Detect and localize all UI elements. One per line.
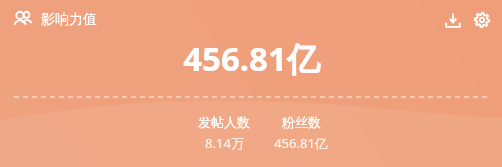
button[interactable]: 发帖人数 — [198, 114, 250, 152]
button[interactable]: 粉丝数 — [274, 114, 328, 152]
staticText: 粉丝数 — [282, 114, 321, 130]
button[interactable]: Settings — [471, 9, 493, 31]
button[interactable]: Download — [442, 9, 464, 31]
button[interactable]: 456.81亿 — [183, 36, 320, 81]
button[interactable]: Audience — [12, 9, 34, 31]
staticText: 456.81亿 — [274, 134, 328, 152]
staticText: 8.14万 — [205, 134, 244, 152]
staticText: 影响力值 — [41, 11, 97, 29]
staticText: 发帖人数 — [198, 114, 250, 130]
staticText: 456.81亿 — [183, 36, 320, 81]
